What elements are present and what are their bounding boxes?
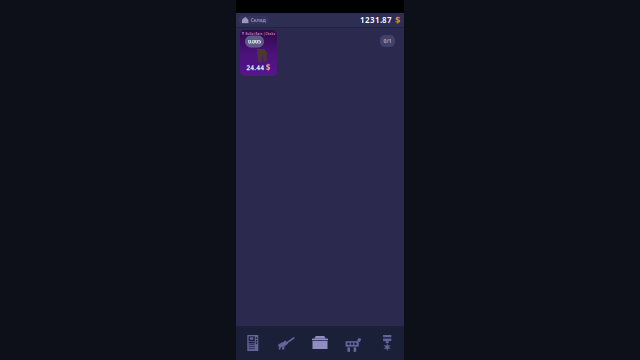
button[interactable]: 0/1 xyxy=(380,35,395,47)
staticText: Склад xyxy=(250,16,265,24)
staticText: $ xyxy=(266,62,271,73)
staticText: 1231.87 xyxy=(360,15,392,25)
staticText: 0.005 xyxy=(248,38,261,45)
button[interactable]: Склад xyxy=(239,16,268,24)
button[interactable]: Shop xyxy=(337,326,370,360)
button[interactable]: Cases xyxy=(236,326,270,360)
button[interactable]: FT Bullet Rain | Choko xyxy=(240,30,277,76)
staticText: 0/1 xyxy=(383,37,391,45)
button[interactable]: Ranks xyxy=(370,326,404,360)
button[interactable]: Inventory xyxy=(303,326,337,360)
staticText: $ xyxy=(395,14,400,26)
staticText: 24.44 xyxy=(246,63,264,72)
button[interactable]: Weapons xyxy=(270,326,303,360)
staticText: FT Bullet Rain | Choko xyxy=(241,32,275,36)
